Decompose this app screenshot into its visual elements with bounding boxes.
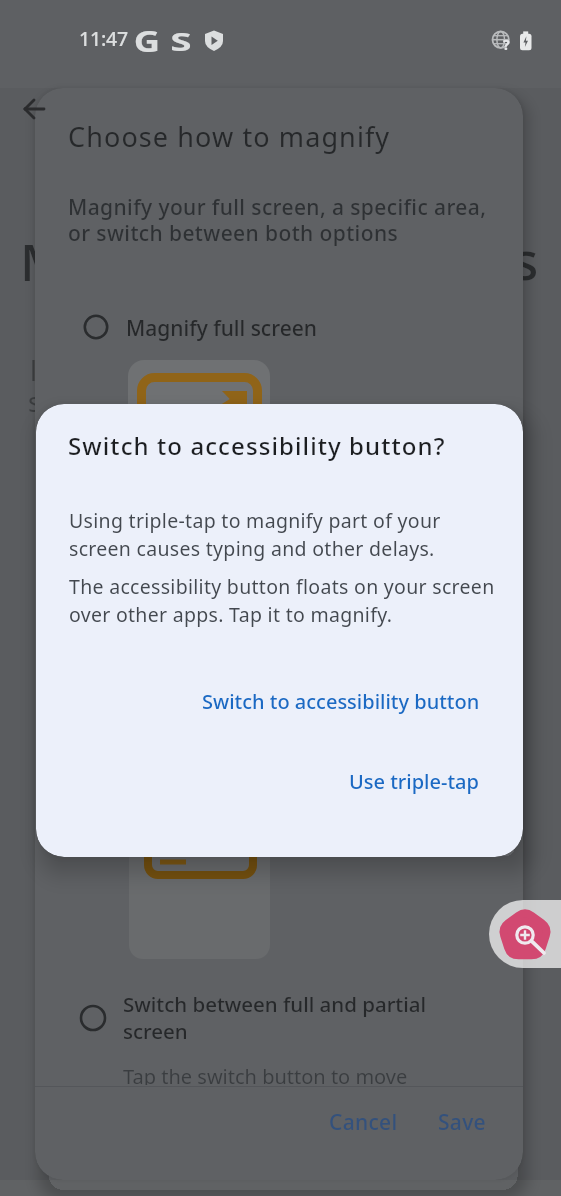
button[interactable]: Switch between full and partial screen: [55, 986, 475, 1050]
button[interactable]: [489, 900, 561, 968]
staticText: Switch to accessibility button?: [68, 429, 446, 462]
staticText: Save: [438, 1108, 486, 1137]
staticText: Choose how to magnify: [68, 118, 391, 155]
staticText: Cancel: [329, 1108, 398, 1137]
staticText: Tap the switch button to move: [123, 1063, 408, 1085]
button[interactable]: Switch to accessibility button: [186, 676, 491, 724]
staticText: s: [28, 383, 41, 420]
staticText: M: [20, 226, 67, 295]
button[interactable]: [14, 96, 54, 136]
staticText: Switch between full and partial screen: [123, 990, 426, 1045]
staticText: G: [134, 22, 161, 60]
staticText: S: [170, 24, 192, 58]
staticText: Switch to accessibility button: [202, 688, 480, 715]
staticText: 11:47: [79, 25, 128, 52]
staticText: s: [513, 224, 539, 295]
staticText: Using triple-tap to magnify part of your…: [69, 507, 441, 562]
staticText: Magnify your full screen, a specific are…: [68, 193, 487, 248]
button[interactable]: Use triple-tap: [326, 756, 486, 804]
staticText: Use triple-tap: [349, 768, 479, 795]
staticText: The accessibility button floats on your …: [69, 573, 495, 628]
staticText: Magnify full screen: [126, 314, 317, 343]
button[interactable]: Magnify full screen: [55, 305, 475, 349]
staticText: ?: [503, 35, 510, 54]
button[interactable]: Save: [423, 1094, 513, 1146]
button[interactable]: Cancel: [311, 1094, 421, 1146]
staticText: l: [30, 352, 37, 389]
